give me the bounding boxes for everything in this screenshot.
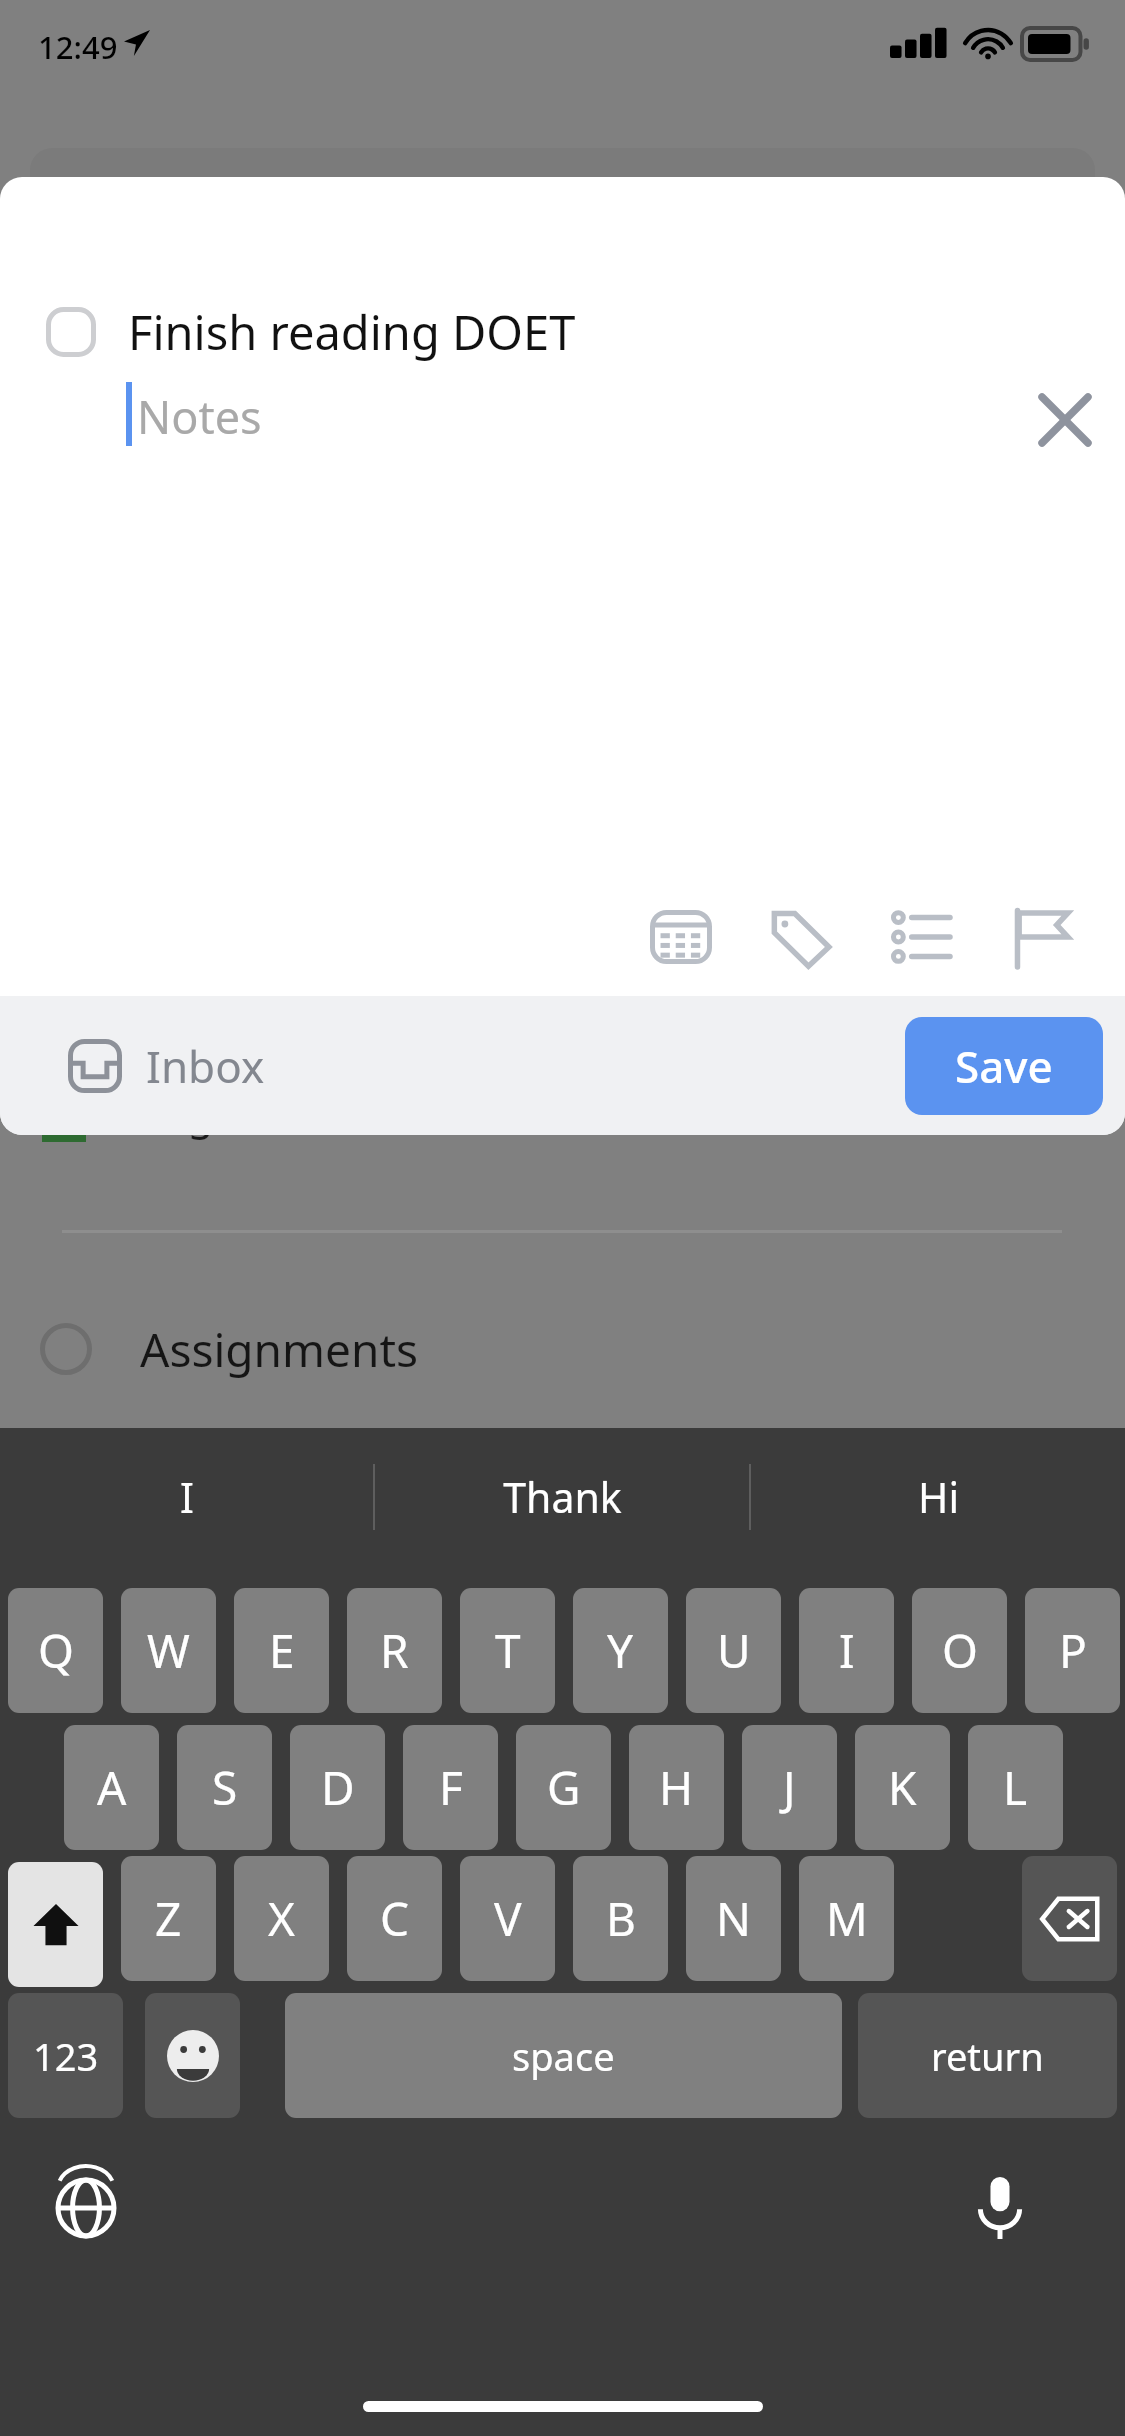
staticText: N [716,1887,751,1950]
staticText: H [659,1756,694,1819]
button[interactable]: C [347,1856,442,1981]
staticText: 12:49 [38,26,118,68]
staticText: return [931,2030,1044,2082]
button[interactable]: F [403,1725,498,1850]
button[interactable]: T [460,1588,555,1713]
staticText: G [547,1756,581,1819]
staticText: P [1059,1619,1087,1682]
staticText: Finish reading DOET [128,300,576,364]
button[interactable]: O [912,1588,1007,1713]
staticText: Logbook [140,1085,313,1142]
staticText: M [826,1887,868,1950]
staticText: Assignments [140,1318,419,1381]
button[interactable]: V [460,1856,555,1981]
button[interactable]: Schedule [621,877,741,997]
button[interactable]: A [64,1725,159,1850]
staticText: T [495,1619,521,1682]
button[interactable]: B [573,1856,668,1981]
button[interactable]: space [285,1993,842,2118]
staticText: F [439,1756,463,1819]
staticText: I [180,1469,194,1525]
button[interactable]: Hi [751,1428,1125,1566]
button[interactable]: Tags [741,877,861,997]
staticText: Inbox [146,1036,265,1096]
staticText: R [380,1619,409,1682]
button[interactable]: P [1025,1588,1120,1713]
button[interactable]: Checklist [861,877,981,997]
button[interactable]: I [799,1588,894,1713]
staticText: B [606,1887,636,1950]
button[interactable]: Inbox [68,996,1125,1135]
button[interactable]: Shift [8,1862,103,1987]
button[interactable]: W [121,1588,216,1713]
button[interactable]: J [742,1725,837,1850]
staticText: L [1003,1756,1028,1819]
staticText: V [494,1887,522,1950]
staticText: C [380,1887,410,1950]
staticText: J [783,1756,796,1819]
staticText: E [269,1619,295,1682]
staticText: 123 [33,2030,99,2082]
button[interactable]: M [799,1856,894,1981]
button[interactable]: Z [121,1856,216,1981]
button[interactable]: I [0,1428,373,1566]
staticText: D [321,1756,355,1819]
button[interactable]: Q [8,1588,103,1713]
button[interactable]: N [686,1856,781,1981]
staticText: U [717,1619,751,1682]
staticText: Y [607,1619,634,1682]
staticText: space [512,2030,615,2082]
button[interactable]: Flag [981,877,1101,997]
staticText: Z [155,1887,182,1950]
button[interactable]: H [629,1725,724,1850]
staticText: Hi [918,1469,959,1525]
button[interactable]: Thank [375,1428,749,1566]
button[interactable]: X [234,1856,329,1981]
staticText: Save [955,1036,1053,1096]
button[interactable]: 123 [8,1993,123,2118]
staticText: W [147,1619,190,1682]
button[interactable]: Emoji [145,1993,240,2118]
staticText: Notes [137,386,262,447]
button[interactable]: Change keyboard [36,2158,136,2258]
button[interactable]: Save [905,1017,1103,1115]
button[interactable]: E [234,1588,329,1713]
staticText: K [888,1756,917,1819]
staticText: X [268,1887,295,1950]
button[interactable]: G [516,1725,611,1850]
button[interactable]: D [290,1725,385,1850]
staticText: S [212,1756,238,1819]
button[interactable]: K [855,1725,950,1850]
button[interactable]: Dictation [950,2158,1050,2258]
button[interactable]: U [686,1588,781,1713]
staticText: O [942,1619,978,1682]
button[interactable]: L [968,1725,1063,1850]
staticText: Thank [503,1469,622,1525]
staticText: I [839,1619,855,1682]
button[interactable]: Backspace [1022,1856,1117,1981]
staticText: Q [38,1619,74,1682]
button[interactable]: Close [1018,373,1112,467]
button[interactable]: return [858,1993,1117,2118]
button[interactable]: Finish reading DOET [0,292,1125,372]
staticText: A [97,1756,127,1819]
button[interactable]: R [347,1588,442,1713]
button[interactable]: Y [573,1588,668,1713]
button[interactable]: S [177,1725,272,1850]
